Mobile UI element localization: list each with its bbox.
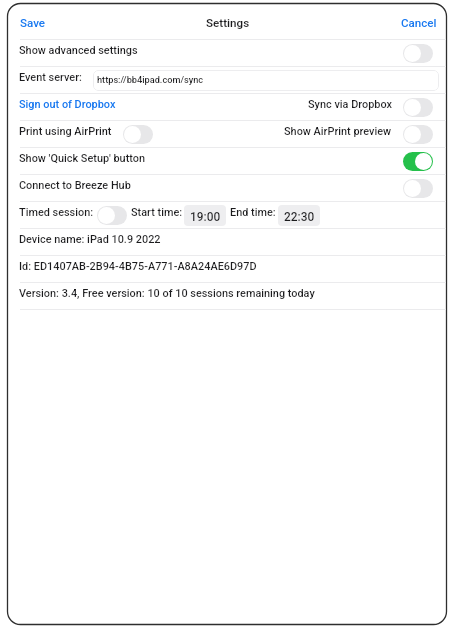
staticText: Timed session: (19, 206, 94, 219)
staticText: Id: ED1407AB-2B94-4B75-A771-A8A24AE6D97D (19, 260, 257, 273)
button[interactable]: Save (20, 16, 46, 30)
staticText: Print using AirPrint (19, 125, 112, 138)
staticText: Sign out of Dropbox (19, 98, 116, 111)
staticText: Version: 3.4, Free version: 10 of 10 ses… (19, 287, 315, 300)
staticText: Show AirPrint preview (284, 125, 392, 138)
staticText: 19:00 (190, 210, 221, 224)
staticText: 22:30 (284, 210, 315, 224)
staticText: Cancel (401, 16, 437, 30)
button[interactable]: Print using AirPrint toggle (123, 125, 153, 144)
button[interactable]: 19:00 (184, 205, 226, 226)
staticText: End time: (230, 206, 276, 219)
button[interactable]: Show Quick Setup button toggle (403, 152, 433, 171)
staticText: Connect to Breeze Hub (19, 179, 131, 192)
staticText: Start time: (131, 206, 183, 219)
button[interactable]: Show AirPrint preview toggle (403, 125, 433, 144)
button[interactable]: https://bb4ipad.com/sync (93, 70, 439, 91)
staticText: Event server: (19, 71, 82, 84)
staticText: Settings (206, 16, 250, 30)
button[interactable]: Timed session toggle (97, 206, 127, 225)
button[interactable]: 22:30 (278, 205, 320, 226)
button[interactable]: Connect to Breeze Hub toggle (403, 179, 433, 198)
button[interactable]: Sync via Dropbox toggle (403, 98, 433, 117)
staticText: Device name: iPad 10.9 2022 (19, 233, 161, 246)
staticText: https://bb4ipad.com/sync (97, 74, 204, 85)
staticText: Show advanced settings (19, 44, 138, 57)
staticText: Sync via Dropbox (308, 98, 392, 111)
staticText: Show 'Quick Setup' button (19, 152, 145, 165)
button[interactable]: Show advanced settings toggle (403, 44, 433, 63)
staticText: Save (20, 16, 46, 30)
button[interactable]: Cancel (401, 16, 437, 30)
button[interactable]: Sign out of Dropbox (19, 101, 116, 114)
